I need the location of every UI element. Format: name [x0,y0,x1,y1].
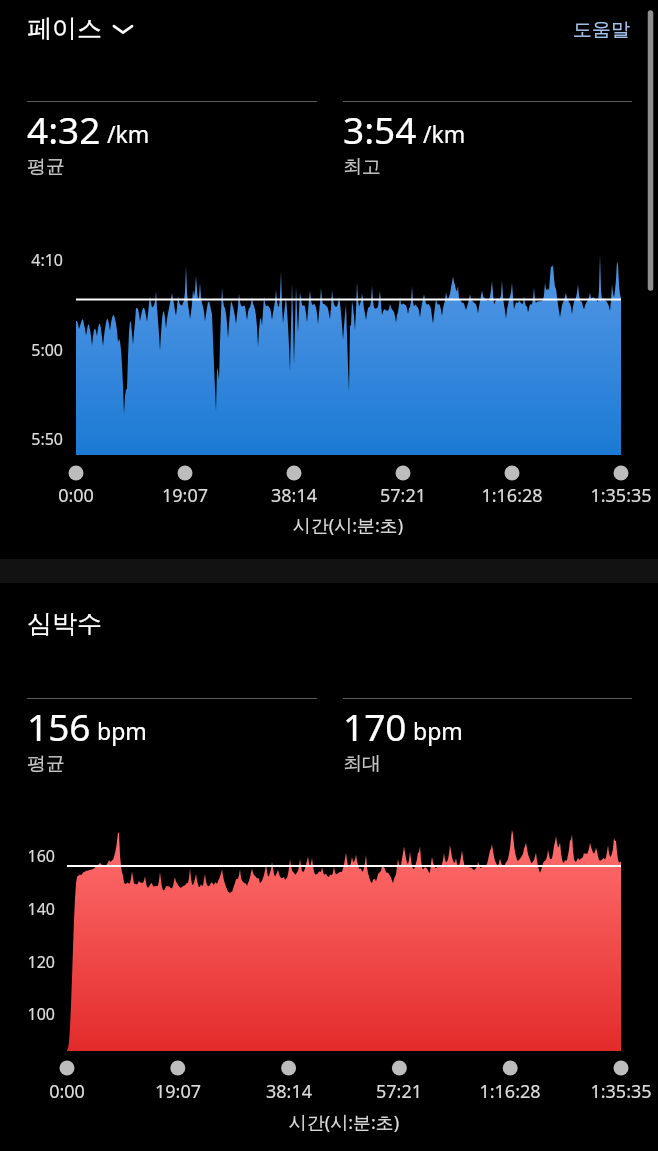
staticText: 평균 [27,752,65,776]
staticText: 100 [0,1003,55,1025]
staticText: 57:21 [343,483,463,508]
staticText: 5:50 [0,428,63,450]
staticText: 38:14 [229,1079,349,1104]
staticText: 4:32 [27,104,101,154]
staticText: 시간(시:분:초) [198,513,498,538]
staticText: 19:07 [125,483,245,508]
staticText: 0:00 [7,1079,127,1104]
staticText: bpm [97,715,147,746]
staticText: 19:07 [118,1079,238,1104]
staticText: 38:14 [234,483,354,508]
staticText: 최대 [343,752,381,776]
staticText: bpm [413,715,463,746]
staticText: 4:10 [0,249,63,271]
staticText: 140 [0,898,55,920]
staticText: 평균 [27,155,65,179]
button[interactable]: 도움말 [561,8,642,52]
staticText: 1:16:28 [452,483,572,508]
staticText: 페이스 [27,13,102,44]
staticText: 170 [343,701,407,751]
staticText: 57:21 [339,1079,459,1104]
staticText: 0:00 [16,483,136,508]
staticText: /km [107,118,150,149]
staticText: 1:35:35 [561,1079,658,1104]
staticText: 156 [27,701,91,751]
staticText: 1:35:35 [561,483,658,508]
staticText: /km [423,118,466,149]
staticText: 120 [0,951,55,973]
button[interactable]: 페이스 [15,5,147,52]
staticText: 도움말 [573,18,630,42]
staticText: 160 [0,845,55,867]
staticText: 심박수 [27,608,102,639]
staticText: 3:54 [343,104,417,154]
staticText: 시간(시:분:초) [194,1110,494,1135]
staticText: 최고 [343,155,381,179]
staticText: 1:16:28 [450,1079,570,1104]
staticText: 5:00 [0,339,63,361]
